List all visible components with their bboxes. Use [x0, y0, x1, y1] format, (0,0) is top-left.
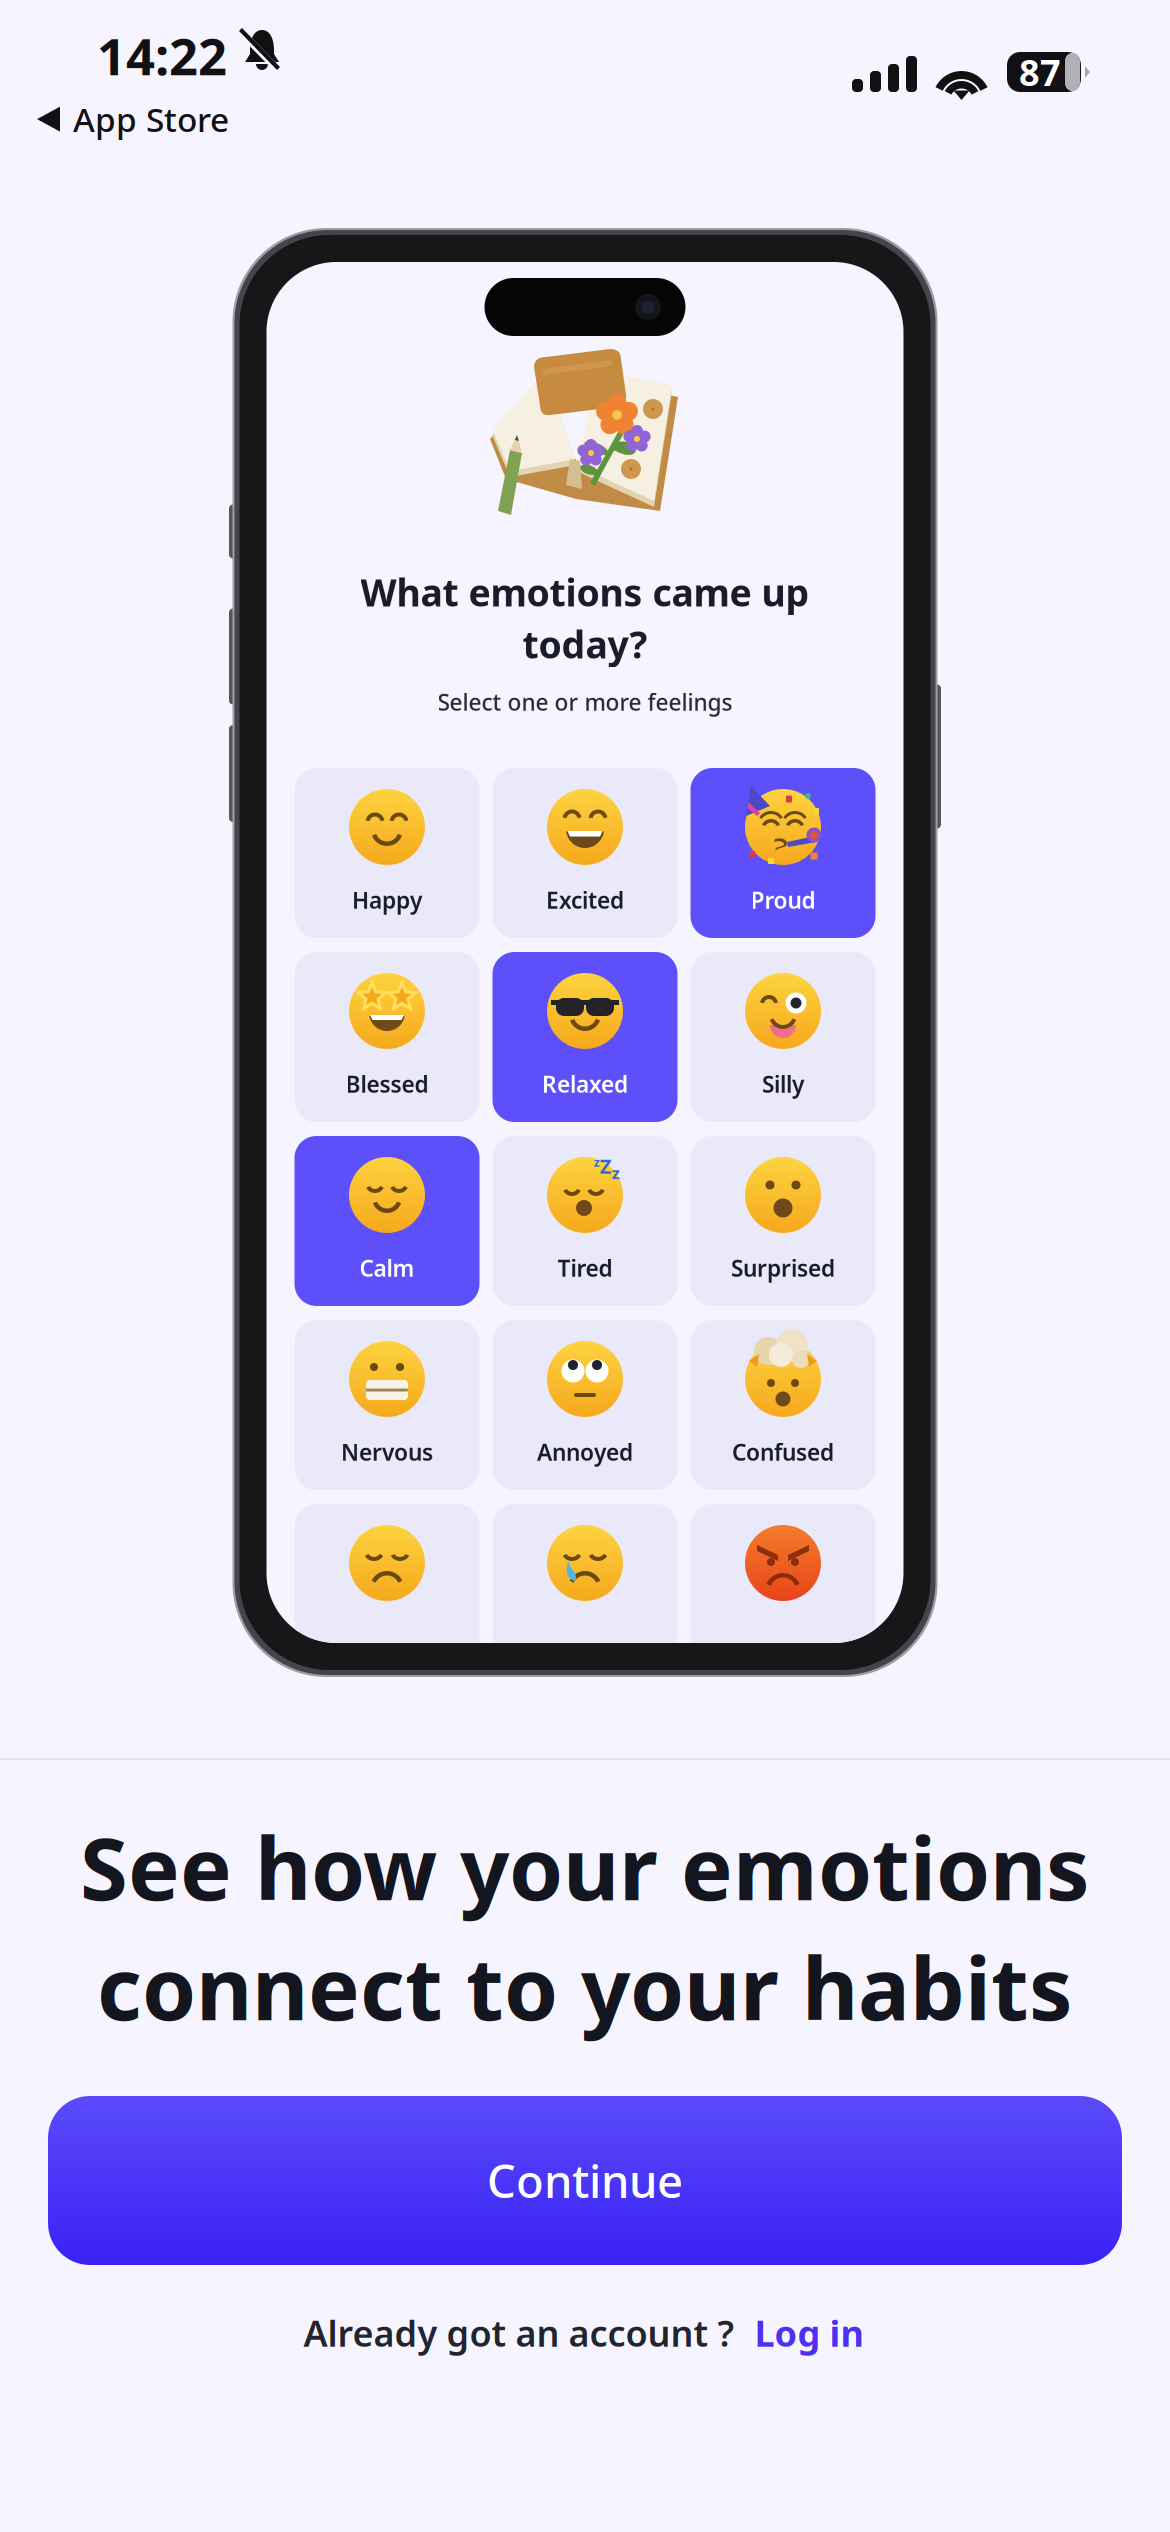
- button[interactable]: Excited: [492, 768, 677, 938]
- staticText: What emotions came up: [360, 567, 809, 617]
- staticText: Blessed: [345, 1069, 428, 1099]
- staticText: Silly: [762, 1069, 804, 1099]
- button[interactable]: [294, 1504, 479, 1674]
- staticText: Z: [600, 1153, 612, 1179]
- staticText: Select one or more feelings: [437, 687, 732, 717]
- staticText: 14:22: [97, 22, 227, 89]
- button[interactable]: [690, 1504, 875, 1674]
- button[interactable]: Happy: [294, 768, 479, 938]
- staticText: 87: [1019, 48, 1061, 96]
- staticText: See how your emotions: [80, 1809, 1090, 1924]
- staticText: z: [612, 1162, 620, 1184]
- button[interactable]: Proud: [690, 768, 875, 938]
- staticText: Nervous: [341, 1437, 433, 1467]
- staticText: App Store: [73, 97, 229, 141]
- staticText: Calm: [359, 1253, 414, 1283]
- staticText: z: [594, 1154, 600, 1170]
- button[interactable]: Z: [492, 1136, 677, 1306]
- button[interactable]: Relaxed: [492, 952, 677, 1122]
- staticText: Continue: [487, 2150, 683, 2211]
- staticText: Happy: [352, 885, 422, 915]
- staticText: connect to your habits: [97, 1929, 1073, 2044]
- button[interactable]: Log in: [751, 2302, 866, 2364]
- button[interactable]: App Store: [33, 91, 233, 147]
- staticText: today?: [522, 619, 647, 669]
- button[interactable]: Calm: [294, 1136, 479, 1306]
- button[interactable]: Blessed: [294, 952, 479, 1122]
- staticText: Relaxed: [542, 1069, 628, 1099]
- button[interactable]: Continue: [48, 2096, 1122, 2265]
- staticText: Confused: [732, 1437, 834, 1467]
- button[interactable]: Silly: [690, 952, 875, 1122]
- button[interactable]: [492, 1504, 677, 1674]
- staticText: Annoyed: [537, 1437, 633, 1467]
- button[interactable]: Surprised: [690, 1136, 875, 1306]
- button[interactable]: Confused: [690, 1320, 875, 1490]
- button[interactable]: Nervous: [294, 1320, 479, 1490]
- button[interactable]: Annoyed: [492, 1320, 677, 1490]
- staticText: Tired: [557, 1253, 612, 1283]
- staticText: Excited: [546, 885, 624, 915]
- staticText: Proud: [750, 885, 815, 915]
- staticText: Surprised: [731, 1253, 835, 1283]
- staticText: Already got an account ?: [303, 2309, 734, 2357]
- staticText: Log in: [754, 2309, 863, 2357]
